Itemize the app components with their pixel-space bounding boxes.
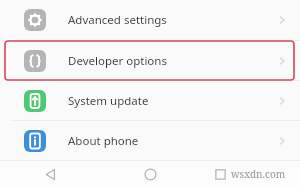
button[interactable]: About phone [0,121,300,160]
staticText: System update [68,93,149,109]
button[interactable]: Developer options [0,41,300,80]
button[interactable]: System update [0,81,300,120]
button[interactable]: Advanced settings [0,0,300,40]
button[interactable]: Home [100,161,200,187]
staticText: About phone [68,133,139,149]
staticText: Developer options [68,53,167,69]
staticText: Advanced settings [68,12,167,28]
staticText: wsxdn.com [231,167,286,181]
button[interactable]: Recent apps [200,161,300,187]
button[interactable]: Back [0,161,100,187]
